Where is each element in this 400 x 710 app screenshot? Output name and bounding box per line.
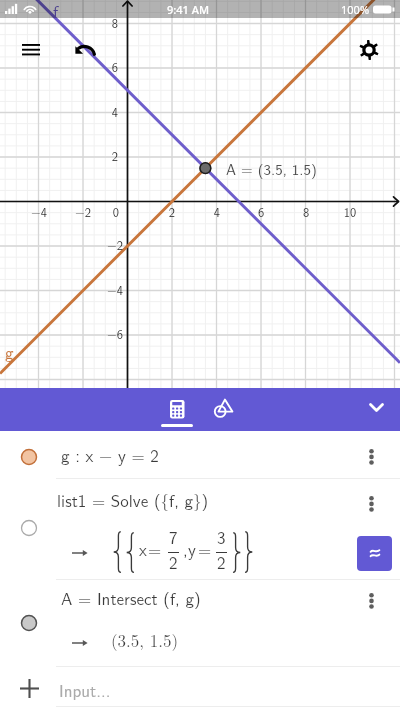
staticText: 4 (197, 203, 237, 221)
staticText: 9:41 AM (167, 2, 210, 17)
button[interactable]: Approximate (357, 536, 392, 571)
staticText: = (148, 536, 162, 561)
button[interactable]: Tools (206, 388, 240, 431)
staticText: 100% (341, 2, 370, 17)
staticText: list1 = Solve ({f, g}) (57, 487, 209, 512)
button[interactable]: Menu (14, 36, 48, 64)
button[interactable]: g : x − y = 2 (0, 431, 400, 478)
button[interactable]: Algebra (157, 388, 199, 431)
staticText: 10 (330, 203, 370, 221)
staticText: −2 (63, 203, 103, 221)
staticText: 6 (95, 58, 135, 76)
staticText: g : x − y = 2 (61, 442, 159, 467)
button[interactable]: Settings (352, 34, 386, 66)
button[interactable]: Add (0, 666, 400, 710)
staticText: −2 (95, 236, 135, 254)
button[interactable]: More options (356, 488, 386, 520)
button[interactable]: Collapse (360, 388, 394, 431)
button[interactable]: Undo (64, 34, 100, 66)
staticText: 2 (95, 147, 135, 165)
staticText: 2 (169, 549, 178, 574)
staticText: 2 (152, 203, 192, 221)
staticText: 7 (169, 524, 178, 549)
staticText: Input... (59, 677, 111, 702)
staticText: , (183, 536, 188, 561)
staticText: 2 (217, 549, 226, 574)
button[interactable]: list1 = Solve ({f, g}) (0, 478, 400, 579)
staticText: x (139, 536, 147, 561)
staticText: 0 (96, 203, 136, 221)
staticText: f (53, 0, 59, 23)
staticText: g (5, 339, 14, 364)
staticText: y (188, 536, 196, 561)
staticText: A = (3.5, 1.5) (226, 158, 317, 180)
button[interactable]: A = Intersect (f, g) (0, 579, 400, 666)
staticText: −4 (95, 281, 135, 299)
staticText: −4 (19, 203, 59, 221)
staticText: 3 (217, 524, 226, 549)
staticText: −6 (95, 325, 135, 343)
button[interactable]: More options (356, 441, 386, 473)
staticText: = (198, 536, 212, 561)
staticText: 4 (95, 103, 135, 121)
staticText: A = Intersect (f, g) (61, 585, 201, 610)
staticText: 8 (286, 203, 326, 221)
staticText: 6 (241, 203, 281, 221)
button[interactable]: More options (356, 585, 386, 617)
staticText: (3.5, 1.5) (111, 628, 179, 652)
other: Add (20, 679, 39, 698)
staticText: 8 (95, 14, 135, 32)
